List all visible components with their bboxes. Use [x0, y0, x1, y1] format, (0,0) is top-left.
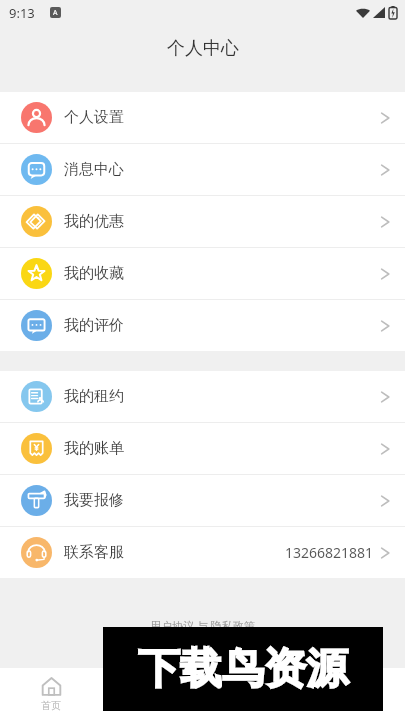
button[interactable]: 我的 [304, 668, 405, 720]
button[interactable]: 消息中心 [0, 144, 405, 196]
staticText: 9:13 [9, 4, 35, 22]
button[interactable]: 联系客服 [0, 527, 405, 578]
staticText: 联系客服 [64, 543, 124, 562]
button[interactable]: 我要报修 [0, 475, 405, 527]
button[interactable]: 发布 [203, 668, 304, 720]
staticText: 发布 [244, 699, 264, 712]
staticText: 个人设置 [64, 108, 124, 127]
button[interactable]: 我的评价 [0, 300, 405, 351]
staticText: 消息中心 [64, 160, 124, 179]
staticText: 我的账单 [64, 439, 124, 458]
staticText: 用户协议 与 隐私政策 [150, 618, 255, 633]
staticText: 我的优惠 [64, 212, 124, 231]
button[interactable]: 用户协议 与 隐私政策 [146, 616, 259, 635]
staticText: 个人中心 [167, 37, 239, 60]
staticText: 13266821881 [285, 543, 374, 562]
staticText: 我的收藏 [64, 264, 124, 283]
staticText: 我的评价 [64, 316, 124, 335]
button[interactable]: 我的账单 [0, 423, 405, 475]
staticText: 我要报修 [64, 491, 124, 510]
button[interactable]: 找房 [102, 668, 203, 720]
button[interactable]: 首页 [0, 668, 102, 720]
staticText: A [53, 8, 58, 18]
button[interactable]: 我的收藏 [0, 248, 405, 300]
button[interactable]: 我的租约 [0, 371, 405, 423]
staticText: 首页 [41, 699, 61, 712]
button[interactable]: 我的优惠 [0, 196, 405, 248]
staticText: 下载鸟资源 [138, 643, 348, 696]
staticText: 我的租约 [64, 387, 124, 406]
staticText: 我的 [345, 699, 365, 712]
button[interactable]: 个人设置 [0, 92, 405, 144]
staticText: 找房 [143, 699, 163, 712]
